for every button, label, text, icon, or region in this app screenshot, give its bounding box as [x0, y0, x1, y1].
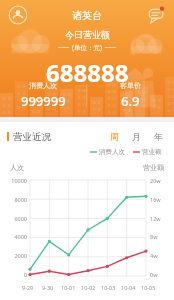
staticText: 营业额: [143, 163, 164, 172]
staticText: 营业额: [142, 148, 162, 156]
staticText: 营业近况: [13, 131, 51, 143]
button[interactable]: Messages: [146, 5, 166, 25]
staticText: 客单价: [120, 81, 141, 90]
staticText: 10-04: [121, 284, 136, 291]
staticText: 999999: [21, 92, 66, 110]
staticText: 8w: [150, 233, 158, 240]
staticText: 9-30: [42, 284, 54, 291]
staticText: 年: [154, 131, 163, 142]
staticText: 周: [110, 131, 119, 142]
staticText: 6.9: [121, 92, 140, 110]
staticText: 月: [132, 131, 141, 142]
button[interactable]: 月: [131, 130, 142, 143]
staticText: 6000: [14, 215, 27, 222]
staticText: 消费人次: [99, 148, 125, 156]
staticText: 10-03: [101, 284, 116, 291]
staticText: 688888: [46, 56, 129, 89]
staticText: 诸英台: [72, 9, 102, 22]
staticText: 10-05: [141, 284, 156, 291]
staticText: 10-01: [61, 284, 76, 291]
staticText: 9-29: [22, 284, 34, 291]
button[interactable]: 周: [109, 130, 120, 143]
staticText: 20w: [150, 177, 161, 184]
staticText: 12w: [150, 215, 161, 222]
staticText: 0: [23, 271, 27, 278]
staticText: 今日营业额: [65, 29, 110, 40]
staticText: 10000: [11, 177, 27, 184]
staticText: 人次: [10, 163, 24, 172]
button[interactable]: Profile: [8, 5, 28, 25]
staticText: 10-02: [81, 284, 96, 291]
staticText: 2000: [14, 252, 27, 259]
button[interactable]: 年: [153, 130, 164, 143]
staticText: 消费人次: [29, 81, 57, 90]
staticText: 0w: [150, 271, 158, 278]
staticText: (单位：元): [72, 43, 102, 52]
staticText: 4w: [150, 252, 158, 259]
staticText: 16w: [150, 196, 161, 203]
staticText: 4000: [14, 233, 27, 240]
staticText: 8000: [14, 196, 27, 203]
